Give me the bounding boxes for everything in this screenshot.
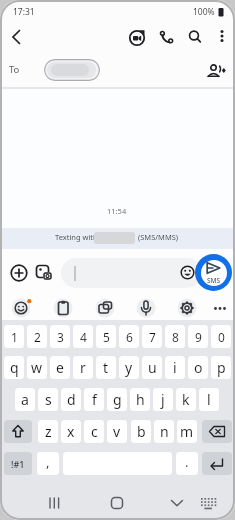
button[interactable] bbox=[202, 420, 232, 443]
button[interactable] bbox=[204, 59, 228, 83]
button[interactable]: !#1 bbox=[4, 452, 32, 475]
staticText: u bbox=[148, 358, 157, 377]
button[interactable]: , bbox=[37, 452, 59, 475]
staticText: (SMS/MMS) bbox=[138, 232, 179, 242]
staticText: m bbox=[180, 422, 194, 441]
button[interactable] bbox=[53, 298, 73, 318]
staticText: i bbox=[173, 358, 177, 377]
staticText: 9 bbox=[195, 329, 202, 345]
button[interactable] bbox=[9, 263, 29, 283]
button[interactable] bbox=[155, 27, 177, 49]
button[interactable]: i bbox=[165, 356, 185, 379]
button[interactable] bbox=[126, 27, 148, 49]
button[interactable] bbox=[44, 59, 100, 81]
button[interactable]: . bbox=[176, 452, 198, 475]
button[interactable]: p bbox=[211, 356, 231, 379]
button[interactable]: z bbox=[38, 420, 58, 443]
staticText: g bbox=[113, 390, 122, 409]
button[interactable]: SMS bbox=[195, 254, 232, 291]
button[interactable] bbox=[4, 420, 32, 443]
staticText: 7 bbox=[149, 329, 156, 345]
button[interactable]: 3 bbox=[50, 325, 70, 348]
button[interactable]: h bbox=[130, 388, 150, 411]
button[interactable] bbox=[136, 298, 156, 318]
button[interactable] bbox=[198, 495, 220, 513]
button[interactable] bbox=[6, 27, 28, 49]
staticText: d bbox=[67, 390, 76, 409]
button[interactable] bbox=[210, 298, 230, 318]
staticText: b bbox=[137, 422, 146, 441]
button[interactable]: 7 bbox=[142, 325, 162, 348]
staticText: n bbox=[160, 422, 169, 441]
staticText: f bbox=[92, 390, 97, 409]
staticText: p bbox=[217, 358, 226, 377]
button[interactable]: 8 bbox=[165, 325, 185, 348]
button[interactable]: d bbox=[61, 388, 81, 411]
staticText: 4 bbox=[80, 329, 87, 345]
button[interactable]: b bbox=[131, 420, 151, 443]
button[interactable]: 2 bbox=[27, 325, 47, 348]
staticText: x bbox=[67, 422, 75, 441]
button[interactable]: 9 bbox=[188, 325, 208, 348]
button[interactable]: e bbox=[50, 356, 70, 379]
staticText: 11:54 bbox=[107, 206, 127, 216]
button[interactable] bbox=[180, 265, 195, 280]
staticText: l bbox=[207, 390, 211, 409]
button[interactable]: j bbox=[153, 388, 173, 411]
button[interactable] bbox=[43, 492, 65, 514]
button[interactable]: 5 bbox=[96, 325, 116, 348]
staticText: e bbox=[56, 358, 64, 377]
button[interactable]: 6 bbox=[119, 325, 139, 348]
button[interactable] bbox=[11, 298, 31, 318]
staticText: 100% bbox=[193, 6, 215, 18]
staticText: 6 bbox=[126, 329, 133, 345]
button[interactable] bbox=[95, 298, 115, 318]
button[interactable]: c bbox=[84, 420, 104, 443]
button[interactable] bbox=[202, 452, 232, 475]
staticText: q bbox=[10, 358, 19, 377]
staticText: 0 bbox=[218, 329, 225, 345]
button[interactable]: t bbox=[96, 356, 116, 379]
button[interactable]: w bbox=[27, 356, 47, 379]
button[interactable]: r bbox=[73, 356, 93, 379]
button[interactable] bbox=[166, 492, 188, 514]
button[interactable] bbox=[211, 25, 233, 47]
button[interactable]: q bbox=[4, 356, 24, 379]
staticText: c bbox=[91, 422, 98, 441]
button[interactable]: k bbox=[176, 388, 196, 411]
staticText: y bbox=[125, 358, 133, 377]
button[interactable]: u bbox=[142, 356, 162, 379]
button[interactable] bbox=[106, 492, 128, 514]
button[interactable] bbox=[61, 258, 202, 288]
staticText: . bbox=[185, 453, 189, 471]
staticText: s bbox=[45, 390, 52, 409]
staticText: Texting with bbox=[55, 232, 98, 242]
staticText: h bbox=[136, 390, 145, 409]
button[interactable] bbox=[34, 263, 54, 283]
button[interactable]: g bbox=[107, 388, 127, 411]
staticText: !#1 bbox=[11, 458, 25, 470]
staticText: 17:31 bbox=[13, 6, 35, 18]
button[interactable]: l bbox=[199, 388, 219, 411]
button[interactable] bbox=[183, 25, 205, 47]
staticText: 8 bbox=[172, 329, 179, 345]
button[interactable] bbox=[177, 298, 197, 318]
button[interactable]: x bbox=[61, 420, 81, 443]
button[interactable]: 0 bbox=[211, 325, 231, 348]
button[interactable]: f bbox=[84, 388, 104, 411]
staticText: w bbox=[31, 358, 43, 377]
button[interactable]: s bbox=[38, 388, 58, 411]
button[interactable]: n bbox=[154, 420, 174, 443]
staticText: a bbox=[21, 390, 29, 409]
button[interactable]: 1 bbox=[4, 325, 24, 348]
button[interactable]: m bbox=[177, 420, 197, 443]
staticText: 2 bbox=[34, 329, 41, 345]
button[interactable]: v bbox=[107, 420, 127, 443]
button[interactable]: y bbox=[119, 356, 139, 379]
staticText: SMS bbox=[207, 276, 221, 285]
button[interactable]: a bbox=[15, 388, 35, 411]
button[interactable]: 4 bbox=[73, 325, 93, 348]
staticText: 1 bbox=[11, 329, 18, 345]
button[interactable]: o bbox=[188, 356, 208, 379]
